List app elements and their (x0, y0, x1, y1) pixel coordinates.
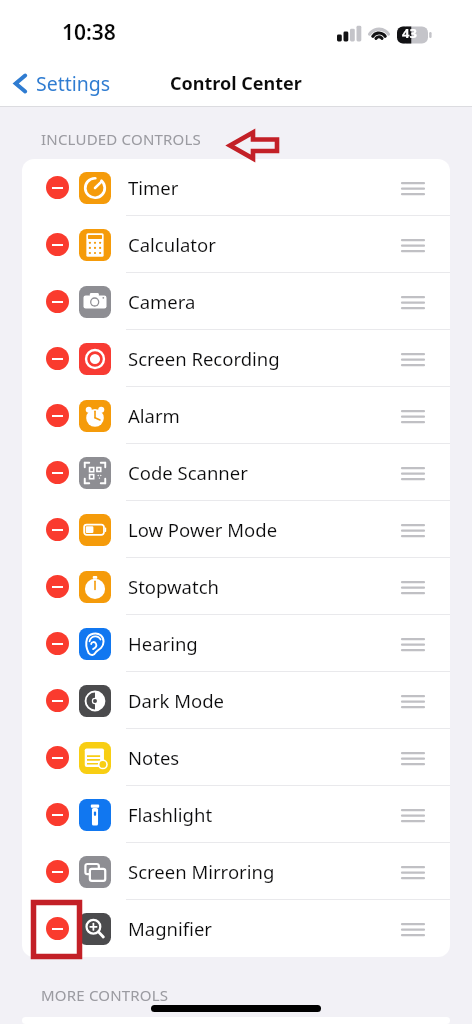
button[interactable]: Remove Dark Mode (22, 672, 450, 729)
button[interactable]: Remove Screen Recording (22, 330, 450, 387)
other: Reorder Timer (401, 182, 425, 194)
other: Reorder Hearing (401, 638, 425, 650)
button[interactable]: Remove Magnifier (22, 900, 450, 957)
button[interactable]: Remove Screen Recording (46, 347, 69, 370)
staticText: Camera (128, 289, 196, 314)
staticText: Notes (128, 745, 180, 770)
button[interactable]: Remove Dark Mode (46, 689, 69, 712)
button[interactable]: Remove Camera (46, 290, 69, 313)
staticText: MORE CONTROLS (41, 985, 169, 1005)
button[interactable]: Remove Notes (22, 729, 450, 786)
staticText: Flashlight (128, 802, 213, 827)
staticText: Low Power Mode (128, 517, 278, 542)
button[interactable]: Remove Stopwatch (46, 575, 69, 598)
button[interactable]: Remove Low Power Mode (46, 518, 69, 541)
other: Reorder Stopwatch (401, 581, 425, 593)
button[interactable]: Remove Screen Mirroring (46, 860, 69, 883)
other: Reorder Screen Mirroring (401, 866, 425, 878)
button[interactable]: Remove Magnifier (46, 917, 69, 940)
staticText: INCLUDED CONTROLS (41, 129, 201, 149)
staticText: Magnifier (128, 916, 212, 941)
staticText: Screen Mirroring (128, 859, 275, 884)
button[interactable]: Remove Flashlight (22, 786, 450, 843)
button[interactable]: Remove Flashlight (46, 803, 69, 826)
other: Reorder Dark Mode (401, 695, 425, 707)
staticText: Stopwatch (128, 574, 219, 599)
staticText: 10:38 (62, 18, 116, 47)
other: Reorder Notes (401, 752, 425, 764)
staticText: Control Center (170, 71, 302, 96)
staticText: Code Scanner (128, 460, 248, 485)
staticText: Hearing (128, 631, 198, 656)
button[interactable]: Remove Hearing (46, 632, 69, 655)
button[interactable]: Remove Timer (22, 159, 450, 216)
other: Reorder Camera (401, 296, 425, 308)
other: Reorder Screen Recording (401, 353, 425, 365)
other: Reorder Alarm (401, 410, 425, 422)
button[interactable]: Remove Notes (46, 746, 69, 769)
other: Reorder Code Scanner (401, 467, 425, 479)
staticText: Timer (128, 175, 179, 200)
button[interactable]: Settings (0, 68, 121, 99)
button[interactable]: Remove Calculator (22, 216, 450, 273)
button[interactable]: Remove Code Scanner (46, 461, 69, 484)
button[interactable]: Remove Camera (22, 273, 450, 330)
button[interactable]: Remove Screen Mirroring (22, 843, 450, 900)
other: Reorder Calculator (401, 239, 425, 251)
other: Reorder Magnifier (401, 923, 425, 935)
staticText: Calculator (128, 232, 216, 257)
other: Reorder Flashlight (401, 809, 425, 821)
button[interactable]: Remove Calculator (46, 233, 69, 256)
button[interactable]: Remove Low Power Mode (22, 501, 450, 558)
staticText: Dark Mode (128, 688, 224, 713)
button[interactable]: Remove Code Scanner (22, 444, 450, 501)
staticText: Alarm (128, 403, 180, 428)
button[interactable]: Remove Alarm (22, 387, 450, 444)
staticText: 43 (402, 24, 417, 42)
other: Reorder Low Power Mode (401, 524, 425, 536)
button[interactable]: Remove Alarm (46, 404, 69, 427)
button[interactable]: Remove Hearing (22, 615, 450, 672)
button[interactable]: Remove Stopwatch (22, 558, 450, 615)
staticText: Screen Recording (128, 346, 280, 371)
button[interactable]: Remove Timer (46, 176, 69, 199)
staticText: Settings (36, 70, 111, 97)
